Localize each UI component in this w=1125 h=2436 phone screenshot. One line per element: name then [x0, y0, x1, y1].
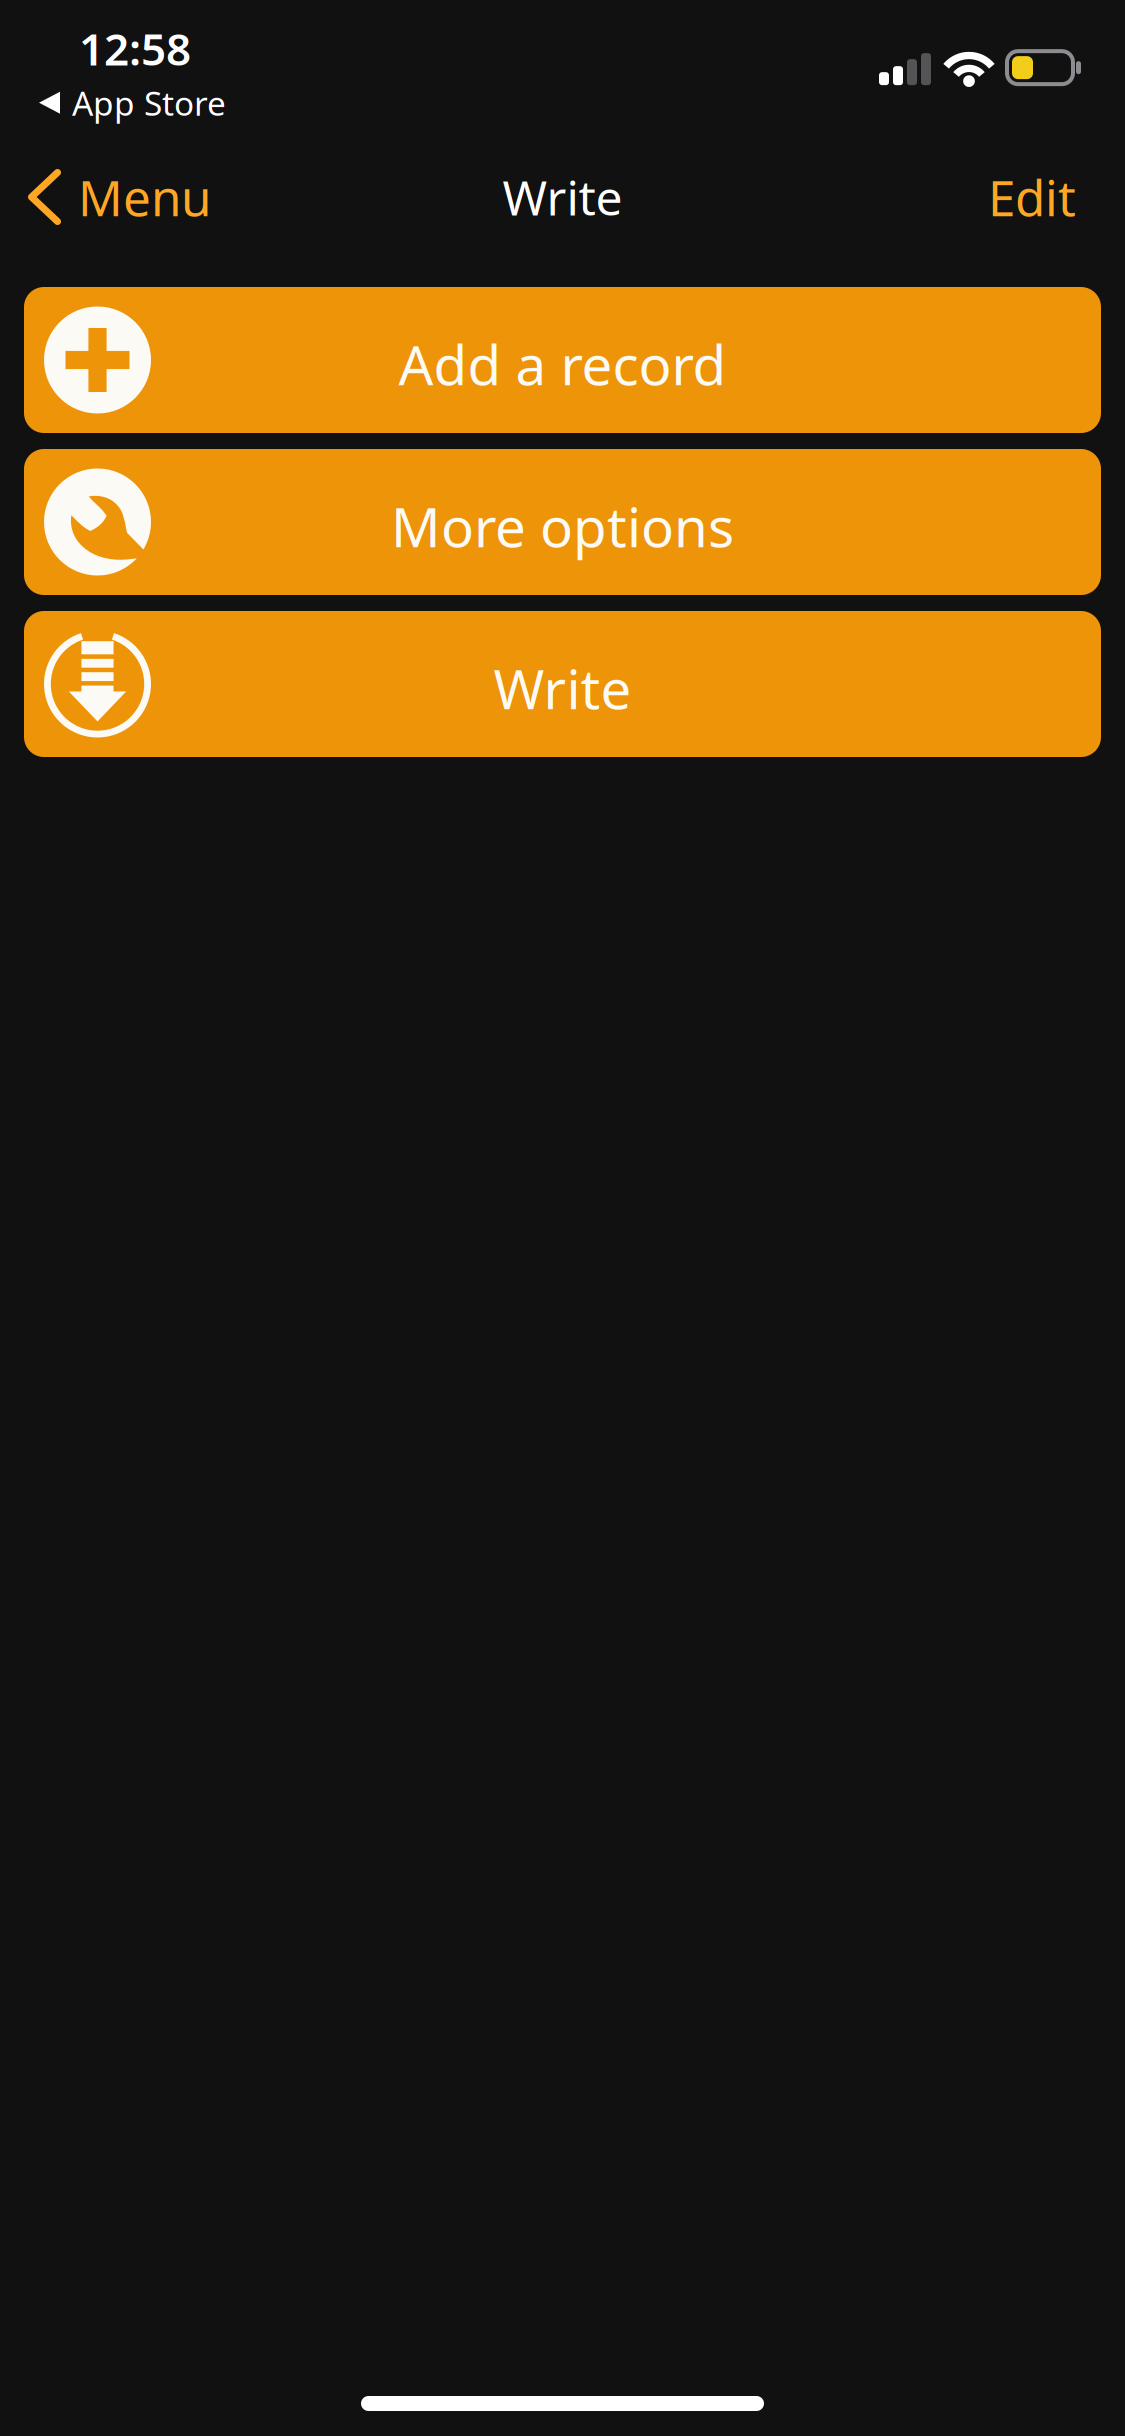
- staticText: Write: [493, 652, 631, 724]
- staticText: More options: [391, 490, 734, 562]
- staticText: App Store: [72, 81, 226, 125]
- staticText: Write: [502, 165, 622, 229]
- button[interactable]: More options: [24, 449, 1101, 595]
- staticText: 12:58: [79, 19, 191, 78]
- button[interactable]: Add a record: [24, 287, 1101, 433]
- staticText: Edit: [988, 164, 1076, 230]
- staticText: Menu: [78, 164, 211, 230]
- staticText: Add a record: [398, 328, 726, 400]
- button[interactable]: Menu: [0, 150, 211, 244]
- button[interactable]: Write: [24, 611, 1101, 757]
- button[interactable]: Edit: [988, 150, 1125, 244]
